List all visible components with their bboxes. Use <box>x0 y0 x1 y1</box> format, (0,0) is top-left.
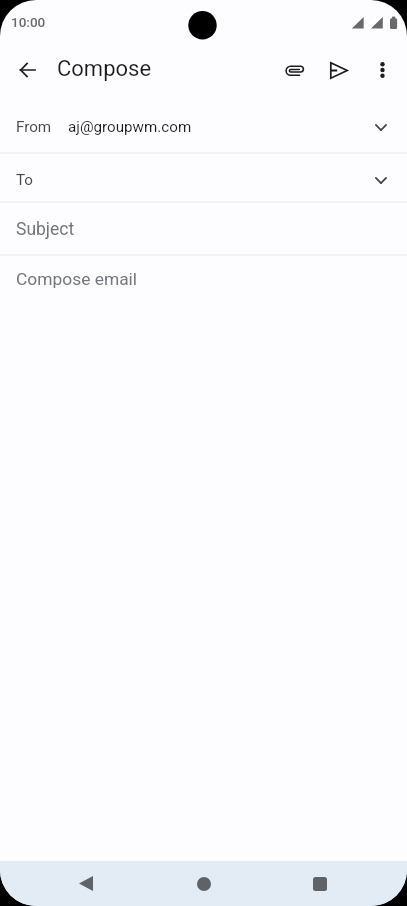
button[interactable] <box>0 154 407 202</box>
staticText: aj@groupwm.com <box>68 118 192 136</box>
button[interactable] <box>0 256 407 303</box>
button[interactable]: Recents <box>296 861 343 906</box>
button[interactable]: Home <box>180 861 227 906</box>
button[interactable]: Expand <box>358 104 404 150</box>
button[interactable]: Send <box>316 47 362 93</box>
button[interactable]: Back <box>62 861 109 906</box>
staticText: To <box>16 171 33 189</box>
button[interactable]: Expand <box>358 157 404 203</box>
staticText: Compose email <box>16 269 138 289</box>
staticText: From <box>16 118 52 136</box>
staticText: 10:00 <box>11 14 46 30</box>
button[interactable]: Back <box>4 47 50 93</box>
staticText: Compose <box>57 56 152 82</box>
button[interactable] <box>0 101 407 153</box>
staticText: Subject <box>16 219 75 240</box>
button[interactable]: Attach file <box>271 48 317 94</box>
button[interactable]: More options <box>359 47 405 93</box>
button[interactable] <box>0 203 407 255</box>
